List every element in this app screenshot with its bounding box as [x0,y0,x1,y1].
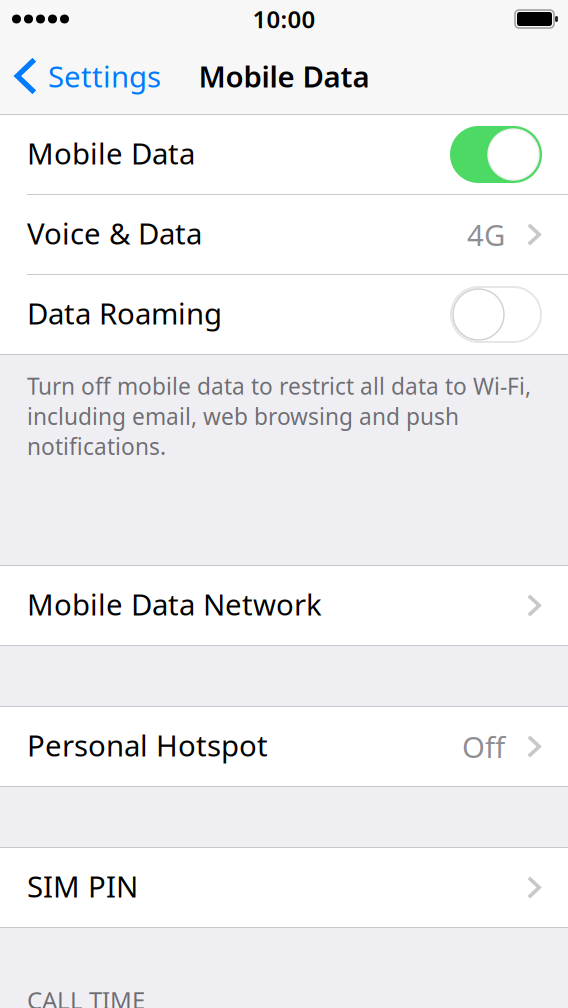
staticText: CALL TIME [27,984,145,1008]
staticText: Mobile Data [27,133,195,172]
staticText: 10:00 [252,3,315,35]
staticText: Off [462,727,505,766]
staticText: Settings [48,56,161,95]
button[interactable]: Personal Hotspot [0,707,568,786]
staticText: Turn off mobile data to restrict all dat… [27,371,531,461]
button[interactable]: Data Roaming [0,275,568,354]
staticText: Voice & Data [27,213,202,252]
staticText: Data Roaming [27,293,222,332]
button[interactable]: Voice & Data [0,195,568,274]
staticText: SIM PIN [27,866,138,905]
staticText: Mobile Data [198,56,369,95]
button[interactable]: Mobile Data Network [0,566,568,645]
staticText: Personal Hotspot [27,725,268,764]
button[interactable]: SIM PIN [0,848,568,927]
staticText: Mobile Data Network [27,584,322,623]
staticText: 4G [467,215,505,254]
button[interactable]: Mobile Data [0,115,568,194]
button[interactable]: Settings [0,38,171,113]
